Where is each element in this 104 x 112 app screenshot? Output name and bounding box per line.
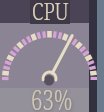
button[interactable]: CPU xyxy=(0,0,104,112)
staticText: CPU xyxy=(32,0,69,26)
staticText: 63% xyxy=(31,81,73,112)
